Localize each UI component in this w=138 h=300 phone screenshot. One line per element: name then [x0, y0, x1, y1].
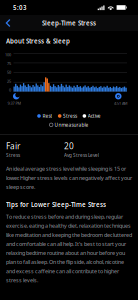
staticText: An ideal average stress level while slee…	[6, 165, 132, 190]
staticText: To reduce stress before and during sleep…	[6, 213, 132, 284]
staticText: 9:37 PM	[7, 101, 21, 106]
staticText: 4:51 AM	[114, 101, 128, 106]
staticText: Stress	[6, 152, 20, 158]
staticText: Fair	[6, 140, 20, 151]
staticText: 100	[5, 52, 11, 57]
staticText: 75	[7, 61, 11, 66]
staticText: 20	[64, 140, 74, 151]
staticText: Tips for Lower Sleep-Time Stress	[6, 200, 106, 209]
staticText: 5:03	[13, 3, 27, 11]
staticText: 50	[7, 70, 11, 75]
staticText: Sleep-Time Stress	[42, 19, 96, 27]
staticText: 25	[7, 79, 11, 84]
staticText: Avg Stress Level	[64, 152, 99, 158]
staticText: About Stress & Sleep	[6, 37, 70, 45]
staticText: Stress	[63, 113, 77, 119]
staticText: 0	[9, 87, 11, 93]
staticText: Rest	[42, 113, 52, 119]
staticText: Unmeasurable	[55, 122, 89, 128]
staticText: Active	[88, 113, 101, 119]
button[interactable]: Back	[0, 16, 18, 30]
